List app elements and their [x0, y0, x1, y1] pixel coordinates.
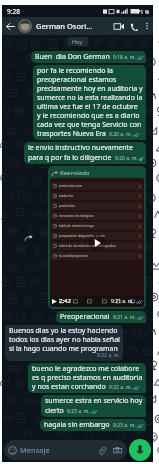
staticText: 9:18 a. m.	[113, 54, 136, 61]
staticText: la cantidad general	[59, 254, 88, 258]
button[interactable]: Attach	[96, 445, 107, 456]
staticText: le envio instructivo nuevamente	[28, 143, 134, 153]
staticText: 9:23 a. m.	[113, 422, 136, 429]
staticText: proteccion	[59, 204, 75, 208]
staticText: 9:23 a. m.	[67, 408, 90, 415]
button[interactable]: Call	[126, 19, 141, 34]
button[interactable]: Buenos dias yo la estoy haciendo todos l…	[5, 325, 123, 361]
button[interactable]: Mensaje	[4, 440, 127, 460]
staticText: 9:22 a. m.	[97, 352, 120, 359]
staticText: tabla de asistencia logo	[59, 224, 95, 228]
button[interactable]: Back	[2, 18, 18, 34]
button[interactable]: Video call	[111, 19, 126, 34]
button[interactable]: Camera	[112, 445, 123, 456]
staticText: Buenos dias yo la estoy haciendo todos l…	[9, 326, 120, 353]
staticText: Hoy	[72, 38, 83, 45]
staticText: Mensaje	[20, 445, 50, 455]
staticText: 9:20 a. m.	[109, 131, 132, 138]
button[interactable]: bueno le agradezco me colabore es q prec…	[28, 363, 146, 393]
button[interactable]: Preoperacional	[56, 311, 146, 323]
staticText: Preoperacional	[60, 312, 110, 322]
staticText: 9:20 a. m.	[115, 155, 138, 162]
staticText: 9:21 a. m.	[113, 314, 136, 321]
staticText: por fa le recomiendo la preoperacional e…	[37, 66, 143, 129]
button[interactable]: Hoy	[67, 37, 88, 46]
button[interactable]: por fa le recomiendo la preoperacional e…	[33, 65, 146, 140]
staticText: conceptos tecnologicos	[59, 214, 95, 218]
staticText: proteccion.com	[59, 184, 83, 188]
staticText: 9:28	[7, 7, 20, 16]
button[interactable]: More options	[141, 20, 153, 32]
staticText: y nos estan corchando	[32, 382, 106, 392]
button[interactable]: le envio instructivo nuevamente	[24, 142, 146, 164]
staticText: cierto	[45, 406, 64, 416]
staticText: traductor	[59, 194, 74, 198]
staticText: trasportes Nueva Era	[37, 129, 106, 139]
button[interactable]: hagala sin embargo	[40, 419, 146, 431]
staticText: sumerce estra en servicio hoy	[45, 396, 143, 406]
staticText: Reenviado	[60, 169, 90, 177]
staticText: 71 %	[137, 8, 150, 15]
staticText: preparacion diagnostico y mas	[59, 234, 105, 238]
staticText: para q por fa lo diligencie	[28, 153, 112, 163]
button[interactable]: Voice message	[129, 439, 151, 461]
button[interactable]: sumerce estra en servicio hoy	[41, 395, 146, 417]
button[interactable]: Reenviado	[48, 166, 146, 309]
staticText: German Osori...	[36, 21, 93, 31]
button[interactable]: Buen dia Don German	[31, 51, 146, 63]
staticText: 9:22 a. m.	[109, 384, 132, 391]
staticText: bueno le agradezco me colabore es q prec…	[32, 364, 143, 382]
staticText: 2:42	[59, 297, 71, 305]
staticText: 9:21 a. m.	[111, 298, 134, 305]
staticText: Buen dia Don German	[35, 52, 110, 62]
staticText: sobre de membrecia novel integrados	[59, 244, 116, 248]
staticText: hagala sin embargo	[44, 420, 110, 430]
